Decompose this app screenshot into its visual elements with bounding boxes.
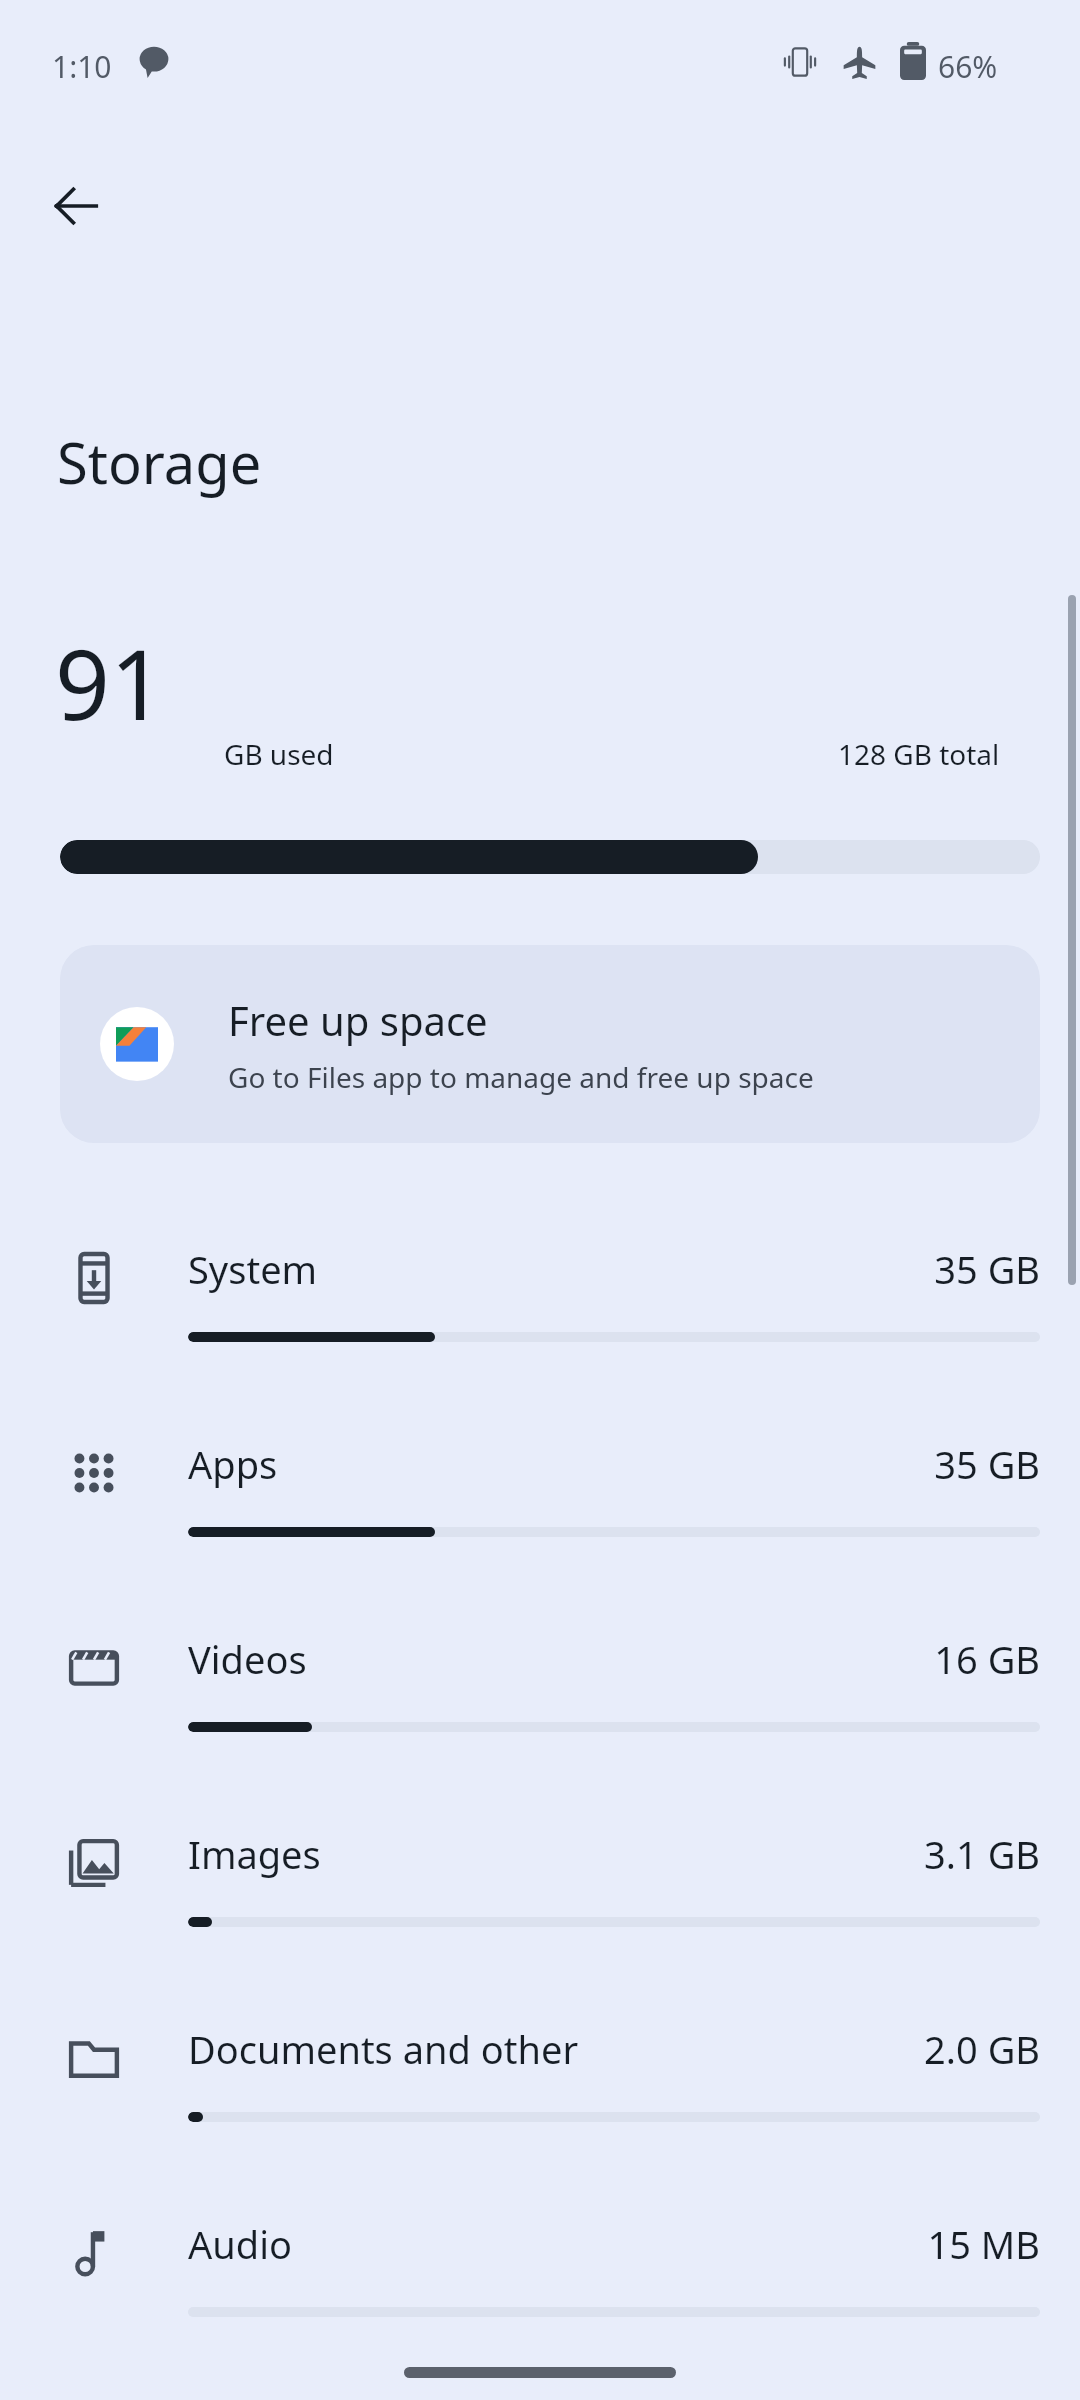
staticText: 2.0 GB xyxy=(600,2023,1040,2075)
staticText: Images xyxy=(188,1828,321,1880)
staticText: 1:10 xyxy=(52,46,112,87)
button[interactable]: Documents and other xyxy=(0,1990,1080,2185)
staticText: 16 GB xyxy=(600,1633,1040,1685)
staticText: 128 GB total xyxy=(838,735,1000,773)
button[interactable]: System xyxy=(0,1210,1080,1405)
staticText: Audio xyxy=(188,2218,292,2270)
button[interactable]: Images xyxy=(0,1795,1080,1990)
staticText: Go to Files app to manage and free up sp… xyxy=(228,1058,814,1096)
button[interactable]: Videos xyxy=(0,1600,1080,1795)
staticText: 91 xyxy=(55,617,165,748)
button[interactable]: Back xyxy=(32,162,120,250)
staticText: GB used xyxy=(224,735,334,773)
staticText: Storage xyxy=(57,424,262,500)
button[interactable]: Apps xyxy=(0,1405,1080,1600)
button[interactable]: Free up space xyxy=(60,945,1040,1143)
staticText: Videos xyxy=(188,1633,307,1685)
button[interactable]: Audio xyxy=(0,2185,1080,2380)
staticText: 15 MB xyxy=(600,2218,1040,2270)
staticText: 66% xyxy=(938,46,998,87)
staticText: System xyxy=(188,1243,318,1295)
staticText: 35 GB xyxy=(600,1243,1040,1295)
staticText: 3.1 GB xyxy=(600,1828,1040,1880)
staticText: Apps xyxy=(188,1438,278,1490)
staticText: 35 GB xyxy=(600,1438,1040,1490)
staticText: Free up space xyxy=(228,993,488,1047)
staticText: Documents and other xyxy=(188,2023,579,2075)
